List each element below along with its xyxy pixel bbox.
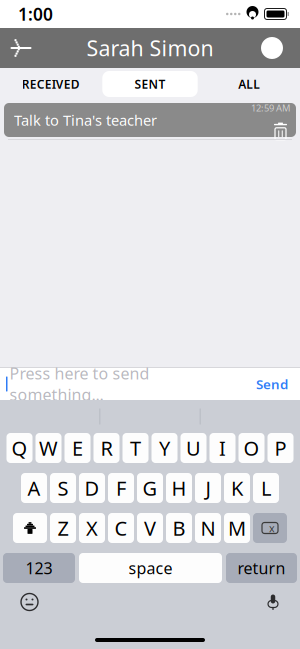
staticText: G <box>142 475 157 501</box>
staticText: X <box>86 515 98 541</box>
staticText: Sarah Simon <box>86 34 213 62</box>
staticText: T <box>130 435 141 461</box>
button[interactable]: I <box>209 433 235 463</box>
staticText: Press here to send something... <box>9 363 149 405</box>
button[interactable]: H <box>166 473 192 503</box>
staticText: x <box>269 521 275 535</box>
button[interactable]: J <box>195 473 221 503</box>
button[interactable]: Z <box>50 513 76 543</box>
staticText: B <box>172 515 185 541</box>
staticText: J <box>205 475 210 501</box>
button[interactable]: T <box>122 433 148 463</box>
button[interactable]: 123 <box>3 553 75 583</box>
button[interactable]: Send <box>250 368 294 400</box>
staticText: 1:00 <box>18 2 53 25</box>
staticText: space <box>128 557 172 579</box>
button[interactable]: RECEIVED <box>3 71 98 97</box>
staticText: V <box>144 515 156 541</box>
button[interactable]: Q <box>6 433 32 463</box>
button[interactable]: B <box>166 513 192 543</box>
staticText: W <box>39 435 58 461</box>
button[interactable]: N <box>195 513 221 543</box>
staticText: K <box>231 475 243 501</box>
staticText: Send <box>256 375 288 393</box>
staticText: D <box>84 475 99 501</box>
staticText: A <box>27 475 40 501</box>
staticText: Talk to Tina's teacher <box>14 110 157 130</box>
button[interactable]: P <box>267 433 293 463</box>
staticText: P <box>274 435 286 461</box>
staticText: R <box>100 435 112 461</box>
button[interactable]: X <box>79 513 105 543</box>
button[interactable]: E <box>64 433 90 463</box>
staticText: Q <box>11 435 27 461</box>
button[interactable]: Back <box>4 31 38 65</box>
button[interactable]: Dictation <box>259 586 287 618</box>
staticText: SENT <box>134 76 165 92</box>
staticText: N <box>200 515 215 541</box>
staticText: 123 <box>25 557 52 579</box>
staticText: C <box>114 515 127 541</box>
button[interactable]: U <box>180 433 206 463</box>
button[interactable]: Profile <box>254 30 290 66</box>
button[interactable]: O <box>238 433 264 463</box>
button[interactable]: L <box>253 473 279 503</box>
button[interactable]: S <box>50 473 76 503</box>
button[interactable]: M <box>224 513 250 543</box>
staticText: S <box>57 475 68 501</box>
staticText: L <box>261 475 271 501</box>
button[interactable]: R <box>93 433 119 463</box>
staticText: H <box>171 475 186 501</box>
button[interactable]: SENT <box>102 71 198 97</box>
button[interactable]: space <box>79 553 222 583</box>
button[interactable]: G <box>137 473 163 503</box>
staticText: RECEIVED <box>22 76 80 92</box>
button[interactable]: D <box>79 473 105 503</box>
staticText: ALL <box>238 76 260 92</box>
staticText: Y <box>159 435 170 461</box>
button[interactable]: Talk to Tina's teacher <box>0 100 300 137</box>
button[interactable]: C <box>108 513 134 543</box>
button[interactable]: return <box>226 553 297 583</box>
staticText: return <box>237 557 285 579</box>
button[interactable]: Emoji keyboard <box>13 585 46 618</box>
button[interactable]: V <box>137 513 163 543</box>
button[interactable]: ALL <box>202 71 297 97</box>
button[interactable]: Shift <box>13 513 47 543</box>
button[interactable]: A <box>21 473 47 503</box>
staticText: F <box>116 475 126 501</box>
button[interactable]: Delete <box>253 513 287 543</box>
staticText: I <box>219 435 226 461</box>
staticText: Z <box>57 515 68 541</box>
staticText: O <box>243 435 259 461</box>
staticText: E <box>72 435 83 461</box>
staticText: 12:59 AM <box>251 102 290 114</box>
button[interactable]: K <box>224 473 250 503</box>
button[interactable]: Y <box>151 433 177 463</box>
staticText: M <box>228 515 246 541</box>
staticText: U <box>186 435 201 461</box>
button[interactable]: F <box>108 473 134 503</box>
button[interactable]: W <box>35 433 61 463</box>
